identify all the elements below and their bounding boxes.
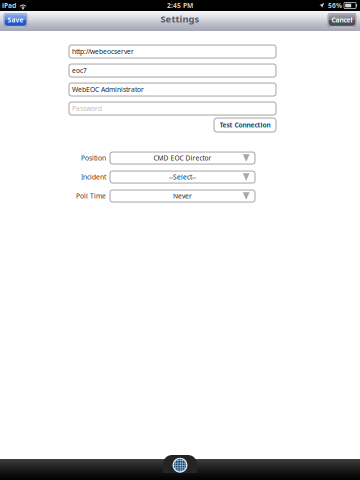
- staticText: --Select--: [169, 173, 196, 181]
- staticText: http://webeocserver: [72, 47, 134, 56]
- staticText: WebEOC Administrator: [72, 85, 144, 94]
- staticText: eoc7: [72, 66, 87, 75]
- staticText: Test Connection: [219, 121, 270, 129]
- staticText: 56%: [328, 1, 342, 10]
- staticText: Incident: [81, 173, 106, 181]
- staticText: Settings: [160, 13, 199, 25]
- staticText: Poll Time: [76, 192, 106, 200]
- staticText: CMD EOC Director: [153, 154, 211, 162]
- button[interactable]: Save: [4, 14, 27, 27]
- button[interactable]: Cancel: [328, 14, 356, 27]
- button[interactable]: Web: [163, 455, 197, 473]
- staticText: Never: [173, 192, 192, 200]
- staticText: Save: [7, 16, 23, 24]
- staticText: Cancel: [331, 16, 352, 24]
- button[interactable]: CMD EOC Director: [110, 152, 255, 164]
- staticText: Password: [72, 104, 102, 113]
- button[interactable]: Never: [110, 190, 255, 202]
- button[interactable]: Test Connection: [214, 118, 276, 132]
- staticText: 2:45 PM: [167, 1, 193, 10]
- staticText: Position: [81, 154, 106, 162]
- button[interactable]: --Select--: [110, 171, 255, 183]
- staticText: iPad: [2, 1, 16, 10]
